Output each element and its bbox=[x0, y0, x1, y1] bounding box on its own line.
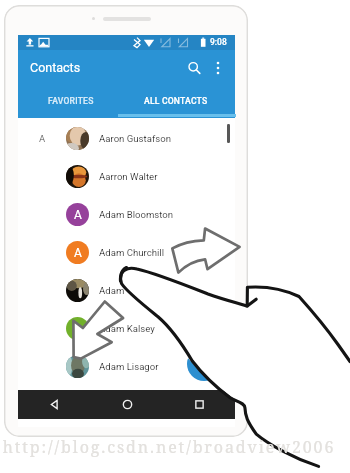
button[interactable]: Adam Lisagor bbox=[18, 347, 235, 385]
button[interactable]: A bbox=[18, 233, 235, 271]
staticText: Adam Lisagor bbox=[99, 361, 159, 372]
staticText: Adam Bloomston bbox=[99, 209, 174, 220]
button[interactable]: ALL CONTACTS bbox=[123, 86, 229, 115]
staticText: 9:08 bbox=[210, 37, 227, 47]
button[interactable]: Add contact bbox=[187, 347, 221, 381]
button[interactable]: A bbox=[18, 195, 235, 233]
button[interactable]: Home bbox=[91, 390, 163, 419]
staticText: Contacts bbox=[30, 60, 81, 75]
staticText: A bbox=[39, 133, 46, 144]
button[interactable]: More options bbox=[205, 55, 231, 81]
staticText: ALL CONTACTS bbox=[144, 96, 208, 106]
button[interactable]: Adam Kalsey bbox=[18, 309, 235, 347]
button[interactable]: Back bbox=[18, 390, 91, 419]
staticText: A bbox=[74, 208, 82, 222]
button[interactable]: Adam bbox=[18, 271, 235, 309]
staticText: Adam bbox=[99, 285, 125, 296]
button[interactable]: Recent apps bbox=[163, 390, 235, 419]
staticText: FAVORITES bbox=[48, 96, 94, 106]
button[interactable]: A bbox=[18, 119, 235, 157]
button[interactable]: Search bbox=[181, 55, 207, 81]
staticText: Aarron Walter bbox=[99, 171, 158, 182]
button[interactable]: FAVORITES bbox=[18, 86, 123, 115]
staticText: Adam Churchill bbox=[99, 247, 164, 258]
staticText: Adam Kalsey bbox=[99, 323, 155, 334]
button[interactable]: Aarron Walter bbox=[18, 157, 235, 195]
staticText: A bbox=[74, 246, 82, 260]
staticText: Aaron Gustafson bbox=[99, 133, 171, 144]
staticText: http://blog.csdn.net/broadview2006 bbox=[0, 436, 344, 458]
